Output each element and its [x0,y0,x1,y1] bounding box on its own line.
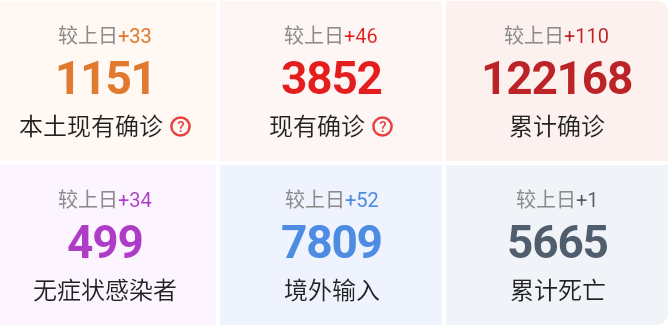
button[interactable]: 说明 [372,116,393,137]
staticText: 本土现有确诊 [19,107,163,142]
staticText: 累计死亡 [510,271,606,306]
staticText: 无症状感染者 [33,271,177,306]
button[interactable]: 较上日+52 [220,165,442,325]
staticText: 累计确诊 [509,107,605,142]
staticText: 499 [67,215,143,269]
staticText: 较上日+46 [284,20,378,49]
staticText: 122168 [481,51,633,105]
staticText: 5665 [507,215,608,269]
staticText: 较上日+52 [285,184,379,213]
staticText: ? [379,118,387,136]
staticText: 现有确诊 [269,107,365,142]
staticText: 较上日+33 [58,20,152,49]
staticText: 较上日+110 [504,20,610,49]
button[interactable]: 较上日+34 [0,165,216,325]
staticText: ? [177,118,185,136]
staticText: 较上日+34 [58,184,152,213]
button[interactable]: 较上日+46 [220,0,442,161]
button[interactable]: 说明 [170,116,191,137]
staticText: 较上日+1 [516,184,599,213]
button[interactable]: 较上日+1 [446,165,668,325]
staticText: 境外输入 [284,271,380,306]
staticText: 3852 [281,51,382,105]
button[interactable]: 较上日+110 [446,0,668,161]
staticText: 1151 [55,51,156,105]
button[interactable]: 较上日+33 [0,0,216,161]
staticText: 7809 [281,215,382,269]
